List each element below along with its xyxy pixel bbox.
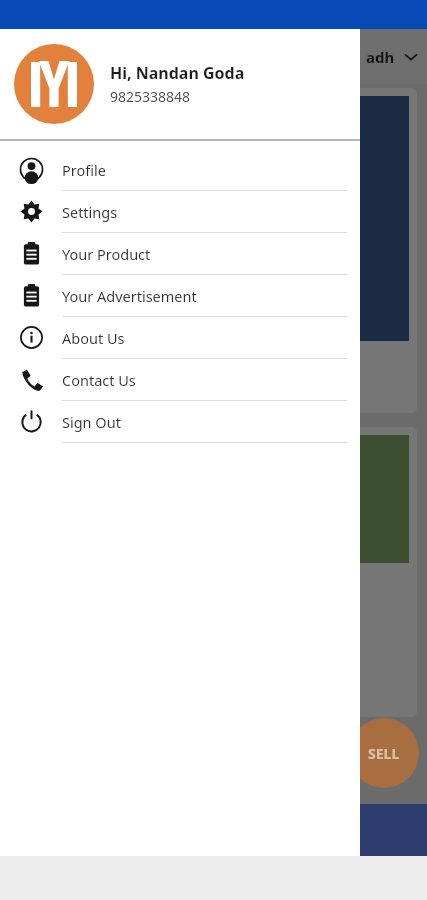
button[interactable]: Settings	[0, 191, 360, 233]
button[interactable]: Clipboard	[0, 275, 360, 317]
staticText: 9825338848	[110, 87, 191, 106]
staticText: Your Advertisement	[62, 286, 197, 306]
staticText: Profile	[62, 160, 106, 180]
staticText: SELL	[368, 744, 400, 763]
staticText: Settings	[62, 202, 118, 222]
other: Sign Out	[20, 410, 43, 433]
staticText: Your Product	[62, 244, 151, 264]
other: Settings	[20, 200, 43, 223]
button[interactable]: Profile	[0, 149, 360, 191]
staticText: Sign Out	[62, 412, 121, 432]
button[interactable]: Sign Out	[0, 401, 360, 443]
staticText: adh	[366, 47, 395, 67]
button[interactable]: Hi, Nandan Goda	[0, 29, 360, 139]
button[interactable]: Contact Us	[0, 359, 360, 401]
other: Clipboard	[20, 242, 43, 265]
staticText: Contact Us	[62, 370, 136, 390]
button[interactable]: Clipboard	[0, 233, 360, 275]
button[interactable]: Sell	[349, 718, 419, 788]
other: Contact Us	[20, 368, 43, 391]
staticText: lume	[14, 355, 57, 378]
staticText: About Us	[62, 328, 125, 348]
button[interactable]: About Us	[0, 317, 360, 359]
other: About Us	[20, 326, 43, 349]
other: Clipboard	[20, 284, 43, 307]
other: Profile	[20, 158, 43, 181]
staticText: Hi, Nandan Goda	[110, 62, 245, 84]
